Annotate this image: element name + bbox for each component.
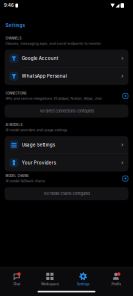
staticText: Settings bbox=[77, 282, 90, 286]
staticText: AI MODELS bbox=[5, 123, 22, 127]
staticText: MODEL CHAINS bbox=[5, 174, 28, 178]
staticText: Inboxes, messaging apps, and social endp… bbox=[5, 41, 101, 46]
staticText: Chat bbox=[13, 282, 20, 286]
button[interactable]: Settings bbox=[66, 267, 100, 296]
button[interactable]: Workspace bbox=[33, 267, 66, 296]
staticText: AI model providers and usage settings bbox=[5, 128, 67, 132]
staticText: No direct connections configured bbox=[39, 109, 93, 113]
staticText: Usage Settings bbox=[22, 142, 55, 148]
button[interactable]: Add bbox=[123, 93, 128, 99]
staticText: No model chains configured bbox=[43, 191, 89, 196]
staticText: 9:46 bbox=[4, 3, 14, 8]
staticText: WhatsApp Personal bbox=[22, 73, 67, 79]
staticText: Google Account bbox=[22, 56, 59, 61]
staticText: CONNECTIONS bbox=[5, 91, 26, 95]
staticText: CHANNELS bbox=[5, 36, 21, 40]
button[interactable]: Profile bbox=[100, 267, 133, 296]
button[interactable]: Google Account bbox=[5, 50, 128, 67]
staticText: Settings bbox=[5, 22, 25, 28]
button[interactable]: Your Providers bbox=[5, 154, 128, 171]
staticText: AI model fallback chains bbox=[5, 179, 45, 183]
staticText: Your Providers bbox=[22, 160, 56, 165]
staticText: Workspace bbox=[41, 282, 59, 286]
button[interactable]: WhatsApp Personal bbox=[5, 67, 128, 85]
button[interactable]: Usage Settings bbox=[5, 136, 128, 154]
button[interactable]: Chat bbox=[0, 267, 33, 296]
staticText: APIs and service integrations (HubSpot, … bbox=[5, 96, 102, 100]
button[interactable]: Add bbox=[123, 176, 128, 181]
staticText: Profile bbox=[111, 282, 121, 286]
